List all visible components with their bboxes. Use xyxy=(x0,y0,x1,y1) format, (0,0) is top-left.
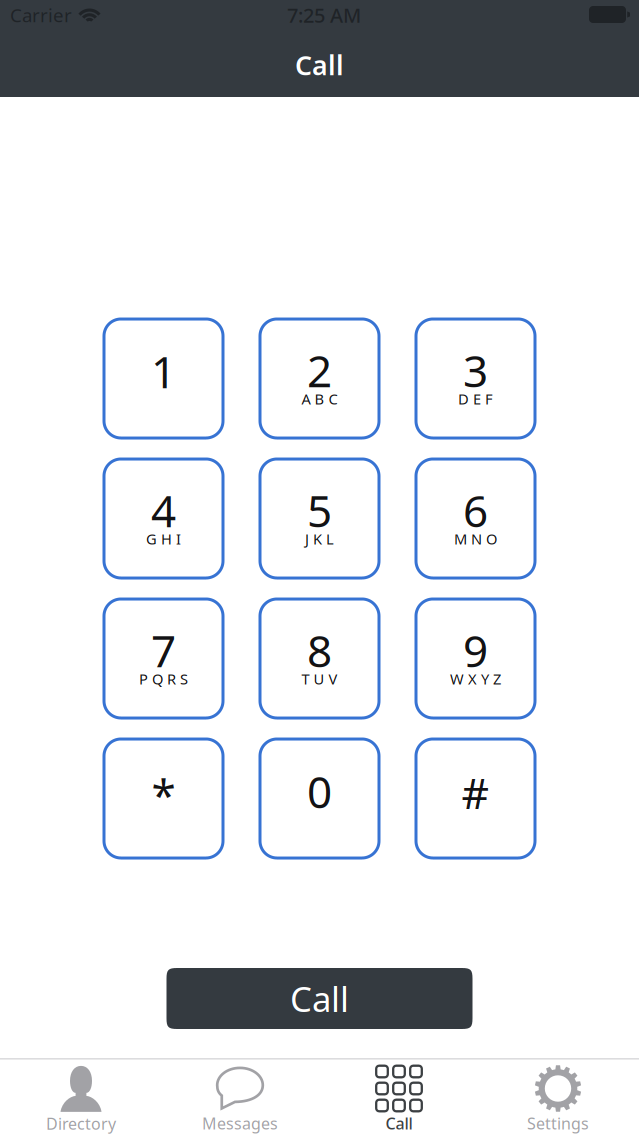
button[interactable]: 7 xyxy=(104,599,223,718)
button[interactable]: Messages xyxy=(160,1058,319,1136)
staticText: Messages xyxy=(202,1113,278,1134)
staticText: 2 xyxy=(307,341,332,399)
staticText: Settings xyxy=(527,1113,589,1134)
button[interactable]: 9 xyxy=(416,599,535,718)
staticText: 3 xyxy=(463,341,488,399)
staticText: 7 xyxy=(151,621,176,679)
staticText: 6 xyxy=(463,481,488,539)
button[interactable]: 6 xyxy=(416,459,535,578)
button[interactable]: Call xyxy=(166,968,472,1029)
staticText: 0 xyxy=(307,762,332,820)
button[interactable]: Directory xyxy=(1,1058,160,1136)
button[interactable]: 8 xyxy=(260,599,379,718)
button[interactable]: 0 xyxy=(260,739,379,858)
button[interactable]: # xyxy=(416,739,535,858)
staticText: # xyxy=(461,764,489,821)
staticText: W X Y Z xyxy=(450,669,501,688)
staticText: Call xyxy=(385,1113,412,1134)
button[interactable]: 1 xyxy=(104,319,223,438)
staticText: M N O xyxy=(454,529,497,548)
staticText: T U V xyxy=(301,669,337,688)
staticText: 4 xyxy=(151,481,176,539)
button[interactable]: 4 xyxy=(104,459,223,578)
staticText: Call xyxy=(295,47,344,83)
button[interactable]: 3 xyxy=(416,319,535,438)
staticText: Call xyxy=(290,975,349,1021)
staticText: 1 xyxy=(151,342,176,400)
staticText: J K L xyxy=(305,529,334,548)
staticText: G H I xyxy=(146,529,181,548)
staticText: Carrier xyxy=(10,3,72,27)
button[interactable]: 2 xyxy=(260,319,379,438)
button[interactable]: * xyxy=(104,739,223,858)
button[interactable]: Settings xyxy=(478,1058,637,1136)
staticText: 9 xyxy=(463,621,488,679)
staticText: 7:25 AM xyxy=(287,2,361,28)
staticText: 8 xyxy=(307,621,332,679)
staticText: 5 xyxy=(307,481,332,539)
staticText: A B C xyxy=(301,389,337,408)
staticText: * xyxy=(151,765,175,823)
button[interactable]: 5 xyxy=(260,459,379,578)
button[interactable]: Call xyxy=(319,1058,478,1136)
staticText: Directory xyxy=(46,1113,116,1134)
staticText: D E F xyxy=(458,389,493,408)
staticText: P Q R S xyxy=(139,669,188,688)
